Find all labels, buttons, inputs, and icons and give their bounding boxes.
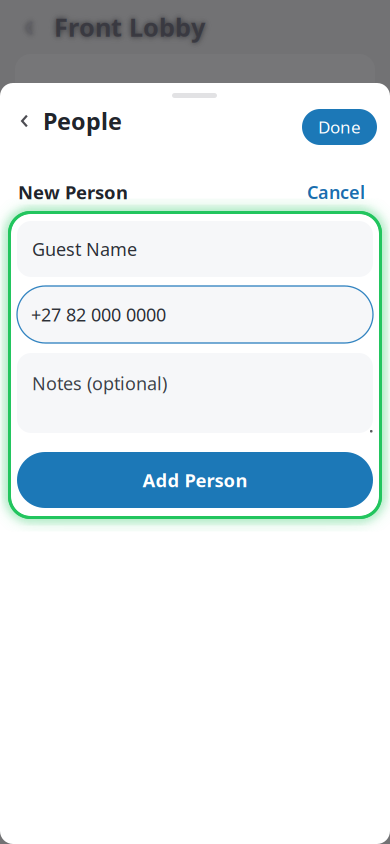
staticText: Notes (optional) [32,371,167,395]
staticText: Cancel [307,180,365,204]
staticText: Guest Name [32,237,137,261]
staticText: People [43,105,122,137]
staticText: Done [318,115,361,139]
button[interactable]: Done [302,109,377,145]
button[interactable]: People [0,99,136,143]
staticText: Add Person [142,467,247,493]
button[interactable]: Cancel [291,173,365,211]
button[interactable]: Add Person [17,452,373,508]
staticText: Front Lobby [54,10,205,44]
staticText: +27 82 000 0000 [31,302,166,327]
staticText: New Person [18,179,128,205]
